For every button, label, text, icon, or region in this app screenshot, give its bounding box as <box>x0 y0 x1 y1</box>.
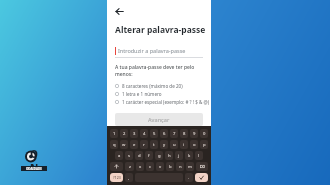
staticText: 1 <box>113 131 116 137</box>
button[interactable]: e <box>130 140 138 149</box>
staticText: 5 <box>153 131 156 137</box>
button[interactable]: , <box>125 173 133 182</box>
staticText: g <box>158 153 161 159</box>
button[interactable]: x <box>136 162 144 171</box>
staticText: ODAIDADE <box>26 167 42 171</box>
button[interactable]: t <box>150 140 158 149</box>
button[interactable]: 1 <box>110 129 118 138</box>
staticText: 3 <box>133 131 136 137</box>
staticText: Introduzir a palavra-passe <box>118 47 186 54</box>
button[interactable]: k <box>185 151 193 160</box>
staticText: 9 <box>193 131 196 137</box>
button[interactable]: 7 <box>170 129 178 138</box>
button[interactable]: 5 <box>150 129 158 138</box>
button[interactable]: n <box>176 162 184 171</box>
staticText: q <box>113 142 116 148</box>
staticText: k <box>188 153 191 159</box>
staticText: u <box>173 142 176 148</box>
button[interactable]: q <box>110 140 118 149</box>
button[interactable]: m <box>186 162 194 171</box>
staticText: y <box>163 142 166 148</box>
button[interactable]: i <box>180 140 188 149</box>
button[interactable]: v <box>156 162 164 171</box>
staticText: j <box>178 153 180 159</box>
staticText: Avançar <box>148 116 170 123</box>
staticText: a <box>118 153 121 159</box>
staticText: 4 <box>143 131 146 137</box>
staticText: v <box>159 164 162 170</box>
button[interactable]: l <box>195 151 203 160</box>
staticText: w <box>122 142 126 148</box>
staticText: r <box>143 142 145 148</box>
staticText: ON <box>30 147 44 166</box>
staticText: z <box>129 164 131 170</box>
staticText: m <box>188 164 192 170</box>
staticText: o <box>193 142 196 148</box>
button[interactable]: r <box>140 140 148 149</box>
button[interactable]: j <box>175 151 183 160</box>
staticText: d <box>138 153 141 159</box>
button[interactable]: a <box>115 151 123 160</box>
button[interactable]: w <box>120 140 128 149</box>
button[interactable]: g <box>155 151 163 160</box>
button[interactable]: z <box>125 162 134 171</box>
staticText: ?123 <box>113 175 121 180</box>
button[interactable]: c <box>146 162 154 171</box>
staticText: , <box>128 175 130 181</box>
staticText: p <box>203 142 206 148</box>
staticText: b <box>169 164 172 170</box>
button[interactable]: 4 <box>140 129 148 138</box>
button[interactable]: 2 <box>120 129 128 138</box>
button[interactable]: Avançar <box>115 113 203 126</box>
button[interactable]: Introduzir a palavra-passe <box>115 44 203 57</box>
staticText: s <box>128 153 131 159</box>
button[interactable]: Shift <box>110 162 123 171</box>
button[interactable]: 0 <box>200 129 208 138</box>
button[interactable]: d <box>135 151 143 160</box>
button[interactable]: Back <box>112 4 126 18</box>
staticText: n <box>179 164 182 170</box>
staticText: f <box>148 153 150 159</box>
button[interactable]: 8 <box>180 129 188 138</box>
staticText: x <box>139 164 142 170</box>
staticText: . <box>188 175 190 181</box>
staticText: 7 <box>173 131 176 137</box>
button[interactable]: h <box>165 151 173 160</box>
button[interactable]: p <box>200 140 208 149</box>
button[interactable]: Enter <box>195 173 208 182</box>
button[interactable]: s <box>125 151 133 160</box>
button[interactable]: 6 <box>160 129 168 138</box>
staticText: 0 <box>203 131 206 137</box>
staticText: t <box>153 142 155 148</box>
button[interactable]: Backspace <box>196 162 208 171</box>
staticText: 6 <box>163 131 166 137</box>
staticText: i <box>183 142 185 148</box>
button[interactable]: 3 <box>130 129 138 138</box>
staticText: h <box>168 153 171 159</box>
button[interactable]: 9 <box>190 129 198 138</box>
staticText: 8 caracteres (máximo de 20) <box>122 83 183 89</box>
button[interactable]: b <box>166 162 174 171</box>
staticText: Alterar palavra-passe <box>115 24 206 36</box>
staticText: 1 letra e 1 número <box>122 91 162 97</box>
staticText: l <box>198 153 200 159</box>
staticText: A tua palavra-passe deve ter pelo menos: <box>115 64 211 78</box>
button[interactable]: y <box>160 140 168 149</box>
staticText: 2 <box>123 131 126 137</box>
button[interactable]: o <box>190 140 198 149</box>
button[interactable]: ?123 <box>110 173 123 182</box>
staticText: e <box>133 142 136 148</box>
button[interactable]: f <box>145 151 153 160</box>
button[interactable]: u <box>170 140 178 149</box>
staticText: c <box>149 164 152 170</box>
staticText: 8 <box>183 131 186 137</box>
button[interactable]: . <box>185 173 193 182</box>
staticText: 1 carácter especial (exemplo: # ? ! $ & … <box>122 99 210 105</box>
